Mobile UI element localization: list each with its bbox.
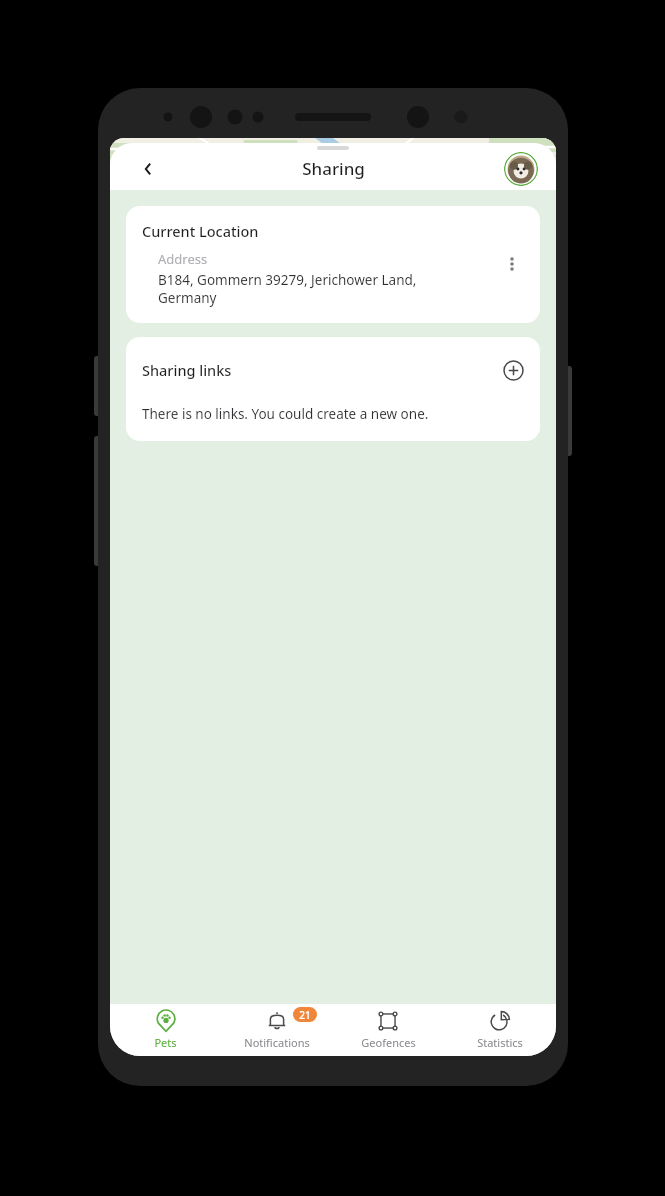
button[interactable]: Create sharing link: [496, 353, 530, 387]
button[interactable]: Back: [130, 151, 166, 187]
staticText: B184, Gommern 39279, Jerichower Land, Ge…: [158, 271, 417, 307]
button[interactable]: Profile: [504, 152, 538, 186]
button[interactable]: Pets: [110, 1004, 221, 1056]
staticText: 21: [299, 1008, 311, 1022]
staticText: Notifications: [244, 1035, 310, 1050]
staticText: Current Location: [142, 221, 259, 241]
button[interactable]: Geofences: [332, 1004, 444, 1056]
staticText: Geofences: [361, 1035, 416, 1050]
staticText: Pets: [154, 1035, 177, 1050]
button[interactable]: Statistics: [444, 1004, 556, 1056]
button[interactable]: Current Location: [126, 206, 540, 323]
button[interactable]: 21: [221, 1004, 332, 1056]
staticText: Statistics: [477, 1035, 523, 1050]
button[interactable]: More options: [492, 244, 532, 284]
staticText: Address: [158, 250, 208, 268]
staticText: There is no links. You could create a ne…: [142, 405, 429, 423]
staticText: Sharing: [302, 157, 365, 180]
staticText: Sharing links: [142, 360, 496, 380]
